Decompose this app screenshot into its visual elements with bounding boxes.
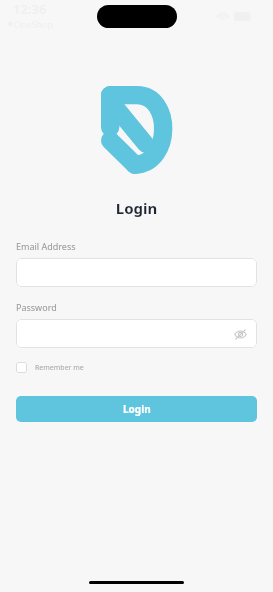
- button[interactable]: Show password: [16, 319, 257, 348]
- button[interactable]: Show password: [231, 325, 249, 343]
- staticText: Login: [123, 402, 151, 416]
- staticText: Login: [0, 198, 273, 218]
- staticText: Password: [16, 301, 57, 313]
- button[interactable]: Remember me: [16, 362, 84, 373]
- button[interactable]: Login: [16, 396, 257, 422]
- staticText: Remember me: [35, 363, 84, 373]
- staticText: Email Address: [16, 240, 76, 252]
- button[interactable]: [16, 258, 257, 287]
